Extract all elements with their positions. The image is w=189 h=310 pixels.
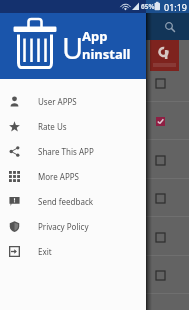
button[interactable]: Rate Us	[0, 114, 146, 139]
button[interactable]: Share This APP	[0, 139, 146, 164]
button[interactable]: More APPS	[0, 164, 146, 189]
staticText: Exit	[38, 246, 52, 257]
button[interactable]: Select app	[152, 229, 169, 246]
button[interactable]: Select app	[152, 190, 169, 207]
staticText: ninstall	[82, 45, 131, 63]
button[interactable]: User APPS	[0, 89, 146, 114]
button[interactable]: Select app	[152, 152, 169, 169]
button[interactable]: Selected	[152, 113, 169, 130]
button[interactable]: Select app	[152, 267, 169, 284]
staticText: 65%	[141, 2, 155, 11]
button[interactable]: Send feedback	[0, 189, 146, 214]
staticText: More APPS	[38, 171, 80, 182]
button[interactable]: Search	[161, 18, 178, 35]
button[interactable]: Select app	[152, 75, 169, 92]
staticText: U	[62, 28, 84, 67]
staticText: Rate Us	[38, 121, 67, 132]
staticText: User APPS	[38, 96, 77, 107]
staticText: App	[82, 27, 108, 45]
button[interactable]: Advertisement	[150, 40, 179, 71]
button[interactable]: Exit	[0, 239, 146, 264]
staticText: Share This APP	[38, 146, 94, 157]
staticText: 01:19	[164, 1, 188, 13]
staticText: Privacy Policy	[38, 221, 89, 232]
staticText: Send feedback	[38, 196, 94, 207]
button[interactable]: Privacy Policy	[0, 214, 146, 239]
